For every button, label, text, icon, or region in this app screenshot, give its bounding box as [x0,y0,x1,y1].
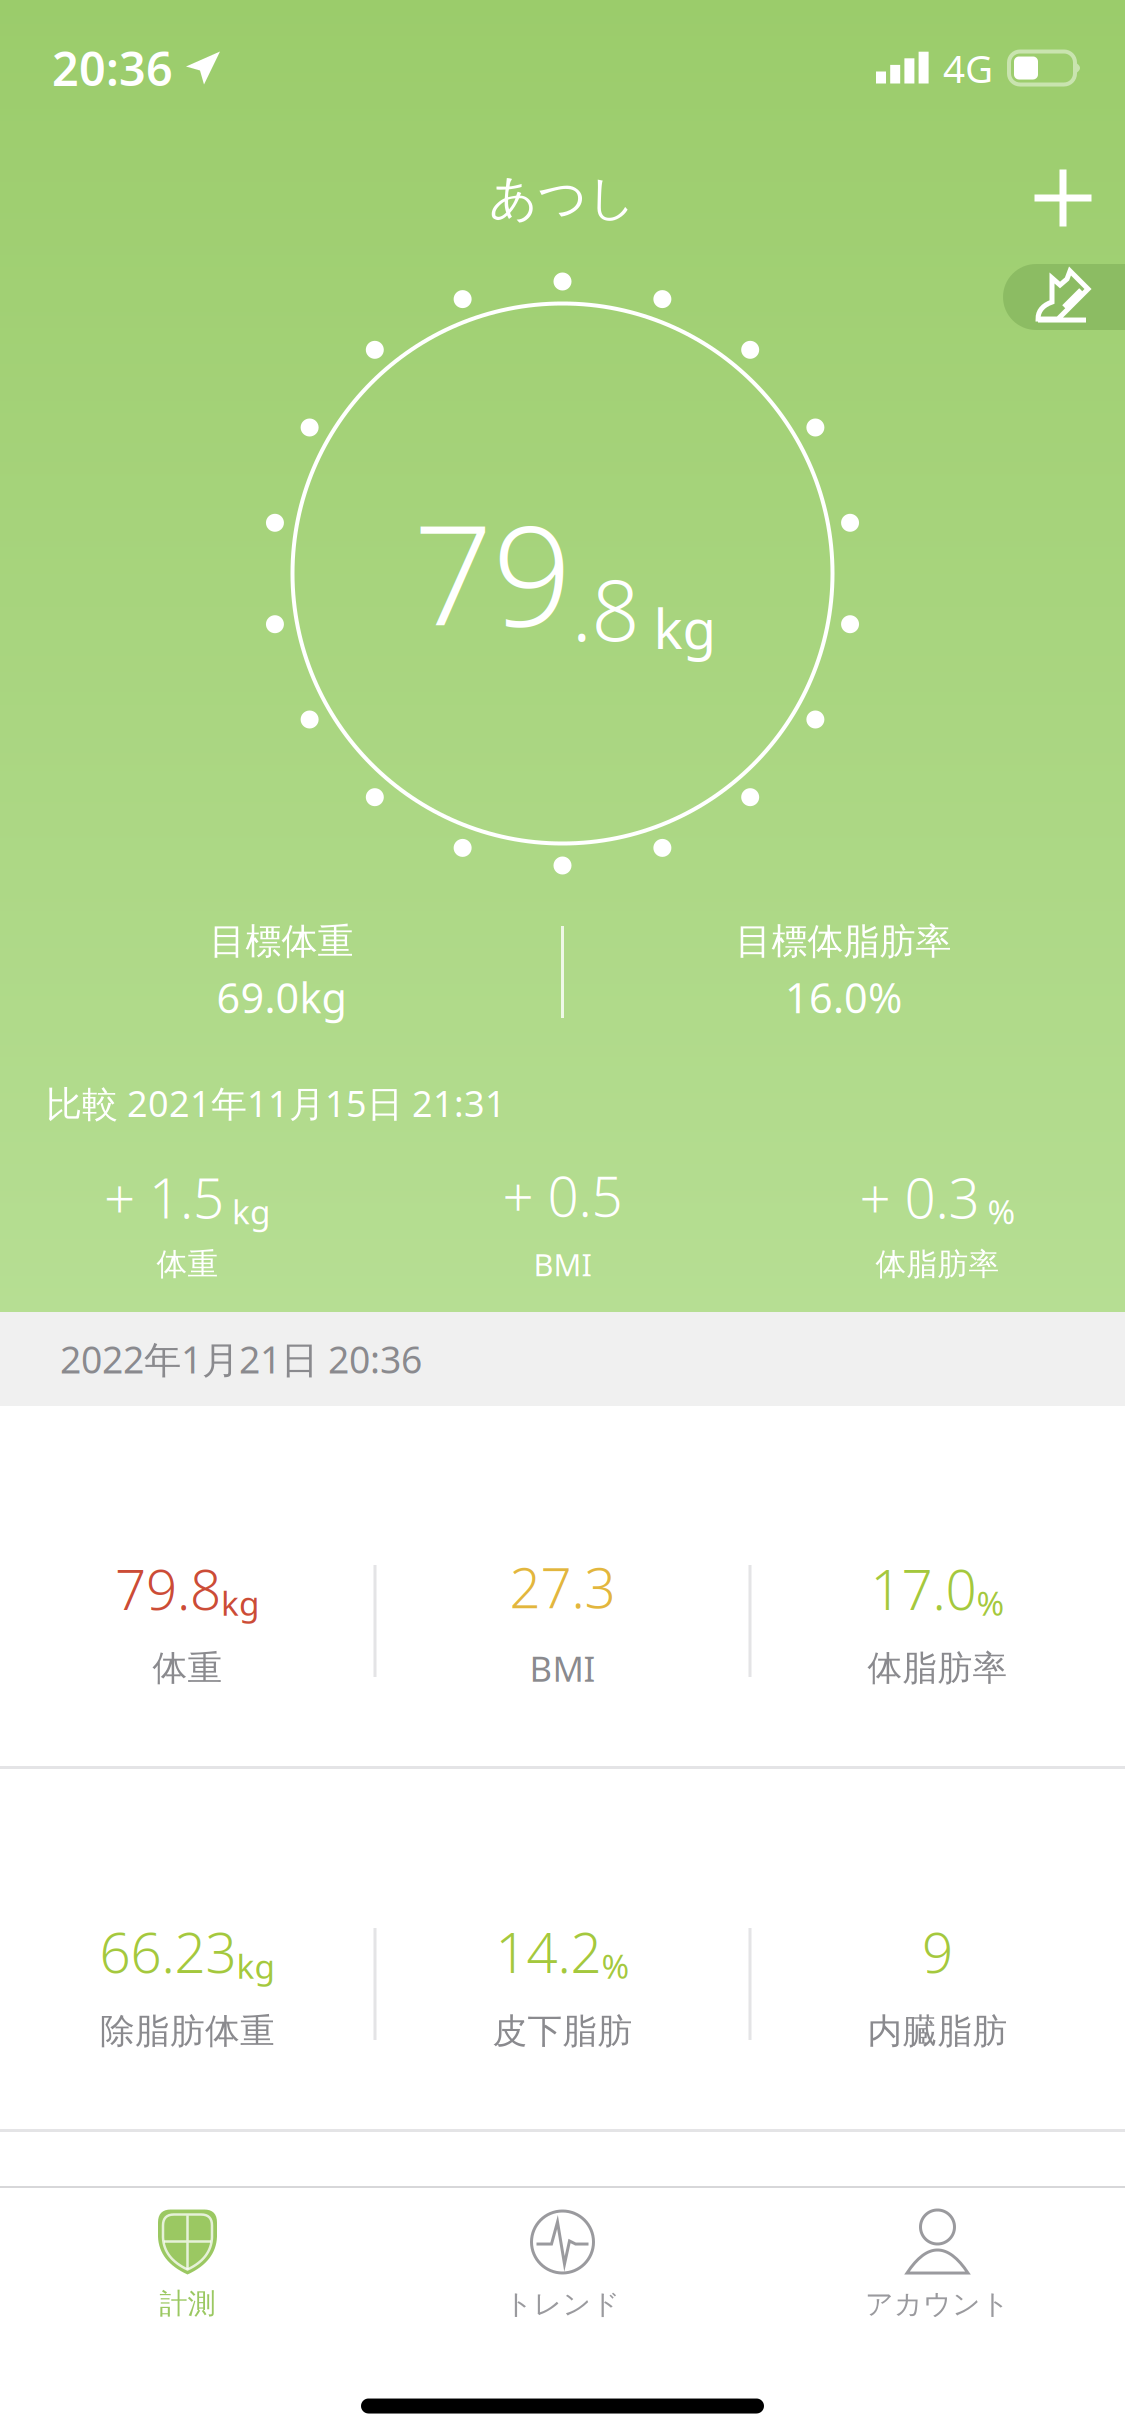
staticText: 体脂肪率 [875,1245,999,1283]
staticText: 体重 [152,1647,222,1690]
staticText: アカウント [865,2287,1010,2321]
button[interactable]: Add [1006,141,1119,254]
staticText: あつし [489,168,636,227]
staticText: BMI [533,1244,591,1285]
staticText: 皮下脂肪 [492,2010,632,2053]
staticText: 4G [943,42,993,94]
staticText: % [601,1944,629,1988]
staticText: 17.0 [870,1552,976,1625]
staticText: 66.23 [99,1915,236,1988]
staticText: kg [221,1581,260,1625]
staticText: + 0.5 [502,1159,622,1232]
staticText: 比較 2021年11月15日 21:31 [46,1079,506,1127]
button[interactable]: Activity [1003,264,1125,330]
staticText: 体重 [156,1245,218,1283]
button[interactable]: トレンド [375,2209,750,2321]
staticText: .8 [571,552,639,664]
staticText: 目標体脂肪率 [735,919,951,964]
staticText: 目標体重 [209,919,353,964]
staticText: トレンド [504,2287,620,2321]
staticText: 14.2 [495,1915,601,1988]
staticText: 79.8 [115,1552,221,1625]
staticText: + 1.5 [104,1161,224,1233]
staticText: 計測 [159,2286,215,2321]
staticText: kg [653,591,716,664]
staticText: 20:36 [52,37,173,99]
staticText: % [976,1581,1004,1625]
staticText: 内臓脂肪 [867,2010,1007,2053]
staticText: 16.0% [785,970,902,1025]
staticText: kg [236,1944,275,1988]
staticText: 79 [413,480,571,664]
staticText: 除脂肪体重 [100,2010,275,2053]
staticText: 9 [922,1915,953,1988]
staticText: 69.0kg [216,970,346,1025]
button[interactable]: 計測 [0,2209,375,2321]
staticText: BMI [529,1645,595,1691]
staticText: 27.3 [509,1551,615,1623]
staticText: 体脂肪率 [867,1647,1007,1690]
staticText: + 0.3 [859,1161,979,1233]
staticText: % [987,1189,1015,1233]
staticText: 2022年1月21日 20:36 [60,1334,422,1384]
button[interactable]: アカウント [750,2209,1125,2321]
staticText: kg [232,1189,271,1233]
